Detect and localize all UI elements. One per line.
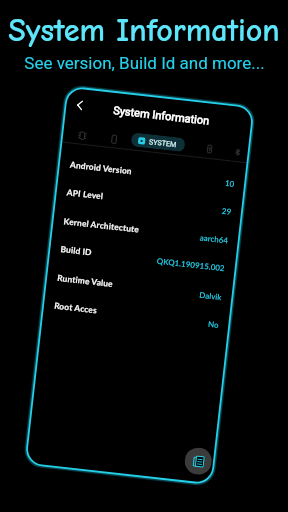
button[interactable]: Android Version: [57, 150, 246, 199]
button[interactable]: Back: [71, 96, 89, 114]
staticText: Root Acces: [54, 301, 97, 315]
button[interactable]: Connectivity: [227, 142, 247, 162]
button[interactable]: API Level: [54, 178, 243, 227]
staticText: Dalvik: [199, 290, 223, 302]
staticText: 10: [224, 178, 235, 189]
button[interactable]: Battery: [200, 139, 220, 159]
staticText: aarch64: [199, 232, 229, 246]
button[interactable]: Runtime Value: [45, 264, 234, 312]
staticText: Build ID: [60, 244, 93, 257]
staticText: See version, Build Id and more...: [24, 53, 265, 73]
staticText: Kernel Architectute: [63, 216, 140, 235]
staticText: QKQ1.190915.002: [156, 256, 226, 273]
staticText: Android Version: [69, 159, 133, 176]
button[interactable]: Root Acces: [42, 291, 231, 340]
staticText: 29: [221, 206, 232, 217]
button[interactable]: Processor: [72, 126, 92, 146]
staticText: API Level: [66, 187, 104, 201]
staticText: Runtime Value: [57, 273, 114, 289]
staticText: System Information: [8, 12, 280, 49]
staticText: SYSTEM: [149, 137, 177, 148]
staticText: System Information: [113, 104, 210, 128]
button[interactable]: Export report: [183, 446, 213, 476]
button[interactable]: Build ID: [48, 235, 237, 283]
button[interactable]: SYSTEM: [130, 132, 186, 152]
staticText: No: [208, 319, 220, 330]
button[interactable]: Device: [104, 129, 124, 149]
button[interactable]: Kernel Architectute: [51, 207, 240, 256]
